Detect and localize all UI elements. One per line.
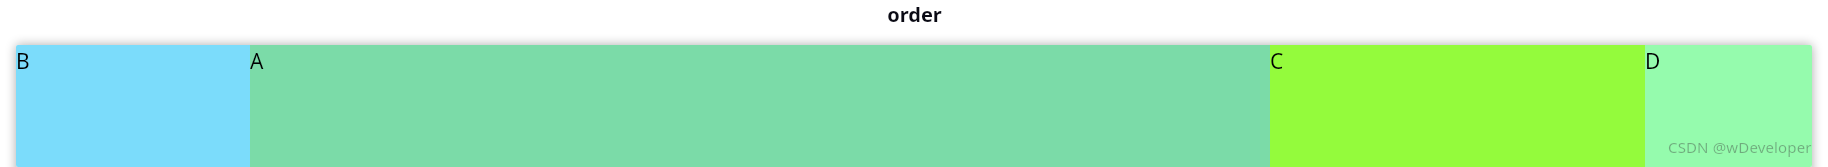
staticText: B [16, 47, 30, 76]
button[interactable]: Item D [1645, 45, 1812, 167]
staticText: order [887, 1, 942, 28]
button[interactable]: Item C [1270, 45, 1645, 167]
staticText: C [1270, 47, 1284, 76]
staticText: CSDN @wDeveloper [1668, 137, 1812, 157]
staticText: D [1645, 47, 1661, 76]
button[interactable]: Item B [16, 45, 250, 167]
button[interactable]: Item A [250, 45, 1270, 167]
staticText: A [250, 47, 264, 76]
